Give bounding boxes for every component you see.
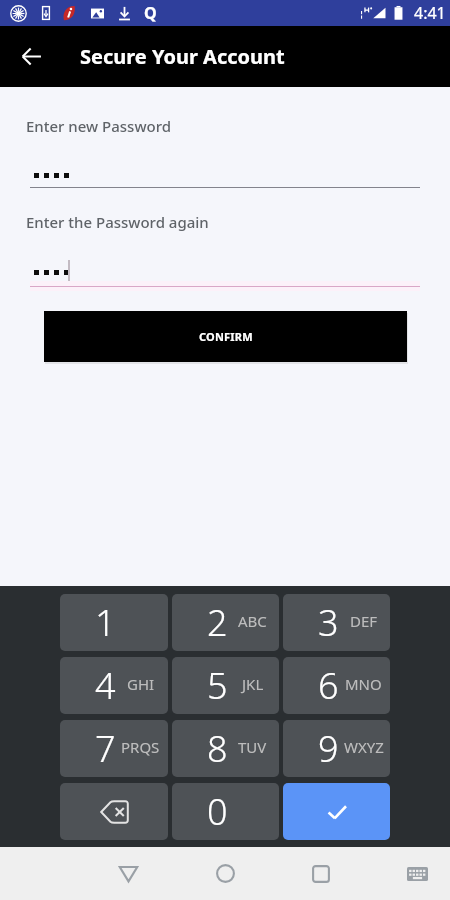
button[interactable]: Enter: [283, 783, 390, 840]
staticText: 9: [318, 724, 339, 773]
staticText: 7: [95, 724, 116, 773]
button[interactable]: 7: [60, 720, 168, 777]
button[interactable]: 1: [60, 594, 168, 651]
button[interactable]: 2: [172, 594, 279, 651]
staticText: 6: [318, 661, 339, 710]
button[interactable]: 4: [60, 657, 168, 714]
button[interactable]: Recent apps: [272, 847, 369, 900]
staticText: 4: [95, 661, 116, 710]
staticText: Enter new Password: [26, 116, 172, 136]
button[interactable]: 5: [172, 657, 279, 714]
button[interactable]: 6: [283, 657, 390, 714]
staticText: 2: [207, 598, 228, 647]
button[interactable]: CONFIRM: [44, 311, 407, 362]
staticText: 5: [207, 661, 228, 710]
staticText: 4:41: [414, 2, 446, 24]
staticText: 0: [207, 787, 228, 836]
staticText: Enter the Password again: [26, 212, 209, 232]
button[interactable]: Home: [177, 847, 274, 900]
button[interactable]: Backspace: [60, 783, 168, 840]
staticText: MNO: [345, 674, 382, 694]
button[interactable]: Back: [0, 26, 62, 87]
button[interactable]: 9: [283, 720, 390, 777]
staticText: CONFIRM: [199, 329, 253, 344]
staticText: PRQS: [121, 737, 160, 757]
button[interactable]: Back: [80, 847, 177, 900]
staticText: TUV: [238, 737, 267, 757]
staticText: Secure Your Account: [80, 43, 285, 70]
button[interactable]: 0: [172, 783, 279, 840]
staticText: 8: [207, 724, 228, 773]
button[interactable]: 3: [283, 594, 390, 651]
staticText: Q: [144, 2, 157, 24]
staticText: 3: [318, 598, 339, 647]
staticText: JKL: [242, 674, 264, 694]
staticText: 1: [95, 598, 116, 647]
staticText: GHI: [127, 674, 155, 694]
staticText: WXYZ: [344, 737, 384, 757]
staticText: ABC: [238, 611, 267, 631]
staticText: DEF: [350, 611, 378, 631]
button[interactable]: 8: [172, 720, 279, 777]
button[interactable]: Switch keyboard: [369, 847, 450, 900]
